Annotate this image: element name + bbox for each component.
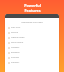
button[interactable]: Fast sync [5,25,59,30]
staticText: Support [11,61,20,64]
button[interactable]: Offline mode [5,35,59,40]
staticText: Sharing [11,56,19,59]
button[interactable]: Dark theme [5,40,59,45]
staticText: Features [24,8,41,13]
button[interactable]: Secure [5,30,59,35]
button[interactable]: Support [5,60,59,65]
staticText: Offline mode [11,36,25,39]
staticText: Everything you need [5,21,59,24]
staticText: Widgets [11,46,20,49]
staticText: Backups [11,51,20,54]
staticText: Secure [11,31,18,34]
staticText: Dark theme [11,41,24,44]
button[interactable] [5,14,59,18]
staticText: Fast sync [11,26,21,29]
button[interactable]: Sharing [5,55,59,60]
staticText: Powerful [24,3,41,8]
button[interactable]: Widgets [5,45,59,50]
button[interactable]: Backups [5,50,59,55]
